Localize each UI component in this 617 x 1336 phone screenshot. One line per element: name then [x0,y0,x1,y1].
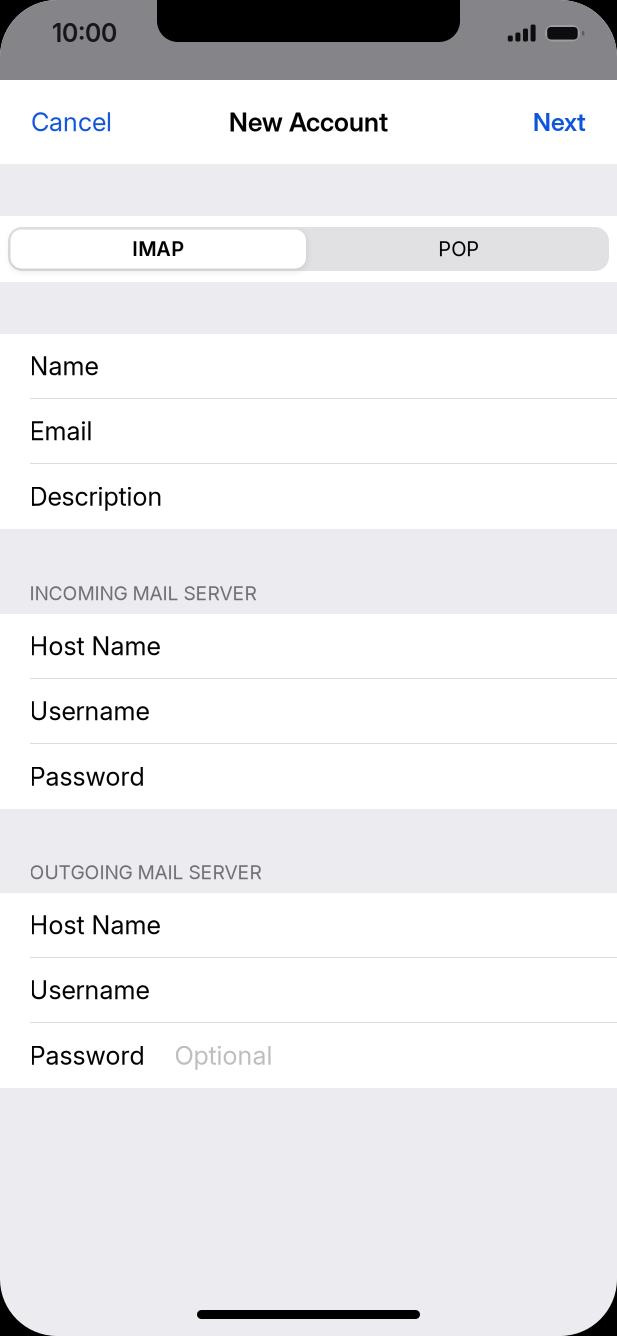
button[interactable]: Password [0,1023,617,1088]
button[interactable]: Email [0,399,617,464]
staticText: Host Name [29,631,160,661]
button[interactable]: Password [0,744,617,809]
staticText: POP [438,237,479,261]
button[interactable]: Host Name [0,893,617,958]
button[interactable]: Description [0,464,617,529]
staticText: Description [29,481,162,512]
button[interactable]: Username [0,958,617,1023]
staticText: INCOMING MAIL SERVER [29,582,256,605]
button[interactable]: POP [308,227,609,271]
button[interactable]: Cancel [0,80,143,164]
staticText: Optional [174,1040,272,1071]
staticText: IMAP [132,237,184,261]
staticText: Username [29,975,149,1005]
button[interactable]: Name [0,334,617,399]
staticText: OUTGOING MAIL SERVER [29,861,261,884]
button[interactable]: Username [0,679,617,744]
staticText: Password [29,761,144,792]
staticText: Next [533,107,586,137]
staticText: Username [29,696,149,726]
staticText: Name [29,351,98,381]
staticText: 10:00 [52,18,117,48]
button[interactable]: Host Name [0,614,617,679]
staticText: Password [29,1040,144,1071]
button[interactable]: Next [502,80,617,164]
staticText: Cancel [31,107,112,137]
staticText: Email [29,416,92,446]
staticText: New Account [229,106,388,138]
button[interactable]: IMAP [8,227,308,271]
staticText: Host Name [29,910,160,940]
